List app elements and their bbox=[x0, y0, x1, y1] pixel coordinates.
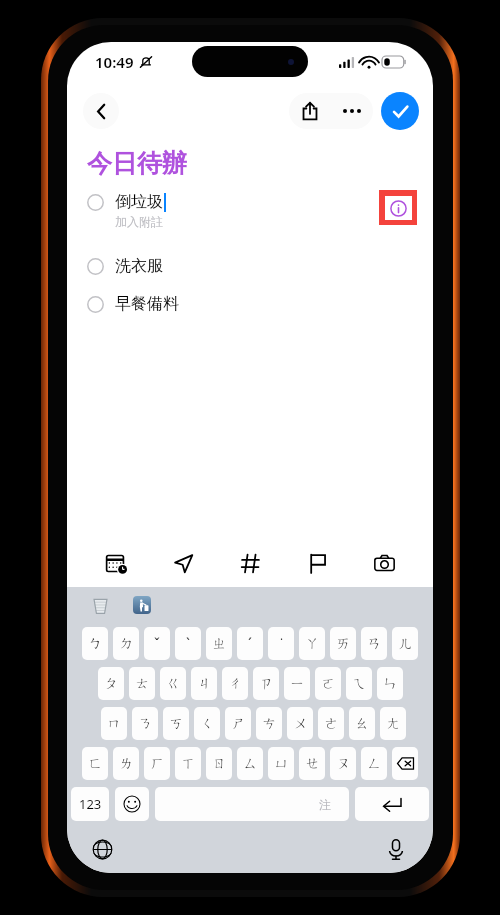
staticText: ㄆ bbox=[104, 675, 119, 693]
button[interactable]: Details bbox=[379, 190, 417, 225]
staticText: 倒垃圾 bbox=[115, 192, 163, 212]
staticText: ㄐ bbox=[197, 675, 212, 693]
staticText: ㄏ bbox=[150, 755, 165, 773]
button[interactable]: ㄔ bbox=[222, 667, 248, 700]
button[interactable]: Add tag bbox=[222, 541, 278, 585]
button[interactable]: 早餐備料 bbox=[87, 285, 433, 323]
staticText: ㄊ bbox=[135, 675, 150, 693]
staticText: ˊ bbox=[248, 634, 252, 653]
button[interactable]: ㄊ bbox=[129, 667, 155, 700]
button[interactable]: ㄘ bbox=[256, 707, 282, 740]
staticText: ㄑ bbox=[200, 715, 215, 733]
button[interactable]: ㄎ bbox=[163, 707, 189, 740]
button[interactable]: ㄑ bbox=[194, 707, 220, 740]
staticText: ㄚ bbox=[305, 635, 320, 653]
button[interactable]: ㄞ bbox=[330, 627, 356, 660]
button[interactable]: ㄆ bbox=[98, 667, 124, 700]
button[interactable]: ㄡ bbox=[330, 747, 356, 780]
button[interactable]: ㄍ bbox=[160, 667, 186, 700]
button[interactable]: Dictation bbox=[381, 834, 411, 864]
button[interactable]: ㄐ bbox=[191, 667, 217, 700]
button[interactable]: Add location bbox=[155, 541, 211, 585]
staticText: 123 bbox=[79, 795, 102, 813]
staticText: 洗衣服 bbox=[115, 256, 163, 276]
button[interactable]: ㄖ bbox=[206, 747, 232, 780]
button[interactable]: ㄌ bbox=[113, 747, 139, 780]
button[interactable]: Add photo bbox=[356, 541, 412, 585]
staticText: ㄗ bbox=[259, 675, 274, 693]
button[interactable] bbox=[89, 594, 111, 616]
button[interactable]: 注 bbox=[155, 787, 349, 821]
staticText: ㄣ bbox=[383, 675, 398, 693]
button[interactable]: Add date bbox=[88, 541, 144, 585]
staticText: ㄓ bbox=[212, 635, 227, 653]
staticText: ㄡ bbox=[336, 755, 351, 773]
button[interactable]: Share bbox=[289, 93, 331, 129]
staticText: 早餐備料 bbox=[115, 294, 179, 314]
staticText: ㄧ bbox=[290, 675, 305, 693]
button[interactable]: ˙ bbox=[268, 627, 294, 660]
button[interactable]: ㄝ bbox=[299, 747, 325, 780]
button[interactable] bbox=[131, 594, 153, 616]
button[interactable]: ㄕ bbox=[225, 707, 251, 740]
button[interactable]: ㄉ bbox=[113, 627, 139, 660]
button[interactable]: ㄦ bbox=[392, 627, 418, 660]
button[interactable]: ㄅ bbox=[82, 627, 108, 660]
button[interactable]: Change keyboard bbox=[87, 834, 117, 864]
staticText: ˋ bbox=[186, 634, 190, 653]
staticText: ㄌ bbox=[119, 755, 134, 773]
button[interactable]: ㄗ bbox=[253, 667, 279, 700]
button[interactable]: ㄤ bbox=[380, 707, 406, 740]
button[interactable]: Done bbox=[381, 92, 419, 130]
staticText: 注 bbox=[319, 797, 331, 812]
button[interactable]: Back bbox=[83, 93, 119, 129]
button[interactable]: ㄥ bbox=[361, 747, 387, 780]
button[interactable]: Return bbox=[355, 787, 429, 821]
button[interactable]: 123 bbox=[71, 787, 109, 821]
button[interactable]: More options bbox=[331, 93, 373, 129]
button[interactable]: ㄇ bbox=[101, 707, 127, 740]
button[interactable]: ㄙ bbox=[237, 747, 263, 780]
staticText: ㄘ bbox=[262, 715, 277, 733]
button[interactable]: ㄒ bbox=[175, 747, 201, 780]
button[interactable]: ㄩ bbox=[268, 747, 294, 780]
staticText: ㄉ bbox=[119, 635, 134, 653]
button[interactable]: Delete bbox=[392, 747, 418, 780]
button[interactable]: ㄧ bbox=[284, 667, 310, 700]
button[interactable]: ˊ bbox=[237, 627, 263, 660]
button[interactable]: ㄏ bbox=[144, 747, 170, 780]
button[interactable]: ㄢ bbox=[361, 627, 387, 660]
staticText: ㄨ bbox=[293, 715, 308, 733]
button[interactable]: ˋ bbox=[175, 627, 201, 660]
staticText: ㄜ bbox=[324, 715, 339, 733]
staticText: ㄦ bbox=[398, 635, 413, 653]
staticText: ㄠ bbox=[355, 715, 370, 733]
staticText: 加入附註 bbox=[115, 214, 163, 229]
staticText: ㄒ bbox=[181, 755, 196, 773]
button[interactable]: ㄈ bbox=[82, 747, 108, 780]
staticText: 今日待辦 bbox=[87, 148, 187, 179]
button[interactable]: ㄚ bbox=[299, 627, 325, 660]
staticText: ㄅ bbox=[88, 635, 103, 653]
staticText: ㄢ bbox=[367, 635, 382, 653]
button[interactable]: ㄟ bbox=[346, 667, 372, 700]
button[interactable]: ㄛ bbox=[315, 667, 341, 700]
button[interactable]: ㄣ bbox=[377, 667, 403, 700]
button[interactable]: ㄨ bbox=[287, 707, 313, 740]
button[interactable]: ㄠ bbox=[349, 707, 375, 740]
button[interactable]: Add flag bbox=[289, 541, 345, 585]
button[interactable]: ㄋ bbox=[132, 707, 158, 740]
button[interactable]: 倒垃圾 bbox=[67, 189, 433, 247]
button[interactable]: ㄜ bbox=[318, 707, 344, 740]
staticText: ˇ bbox=[154, 634, 160, 653]
staticText: ㄈ bbox=[88, 755, 103, 773]
button[interactable]: 洗衣服 bbox=[87, 247, 433, 285]
button[interactable]: Emoji bbox=[115, 787, 149, 821]
staticText: ㄙ bbox=[243, 755, 258, 773]
staticText: ㄞ bbox=[336, 635, 351, 653]
staticText: ㄋ bbox=[138, 715, 153, 733]
button[interactable]: ㄓ bbox=[206, 627, 232, 660]
staticText: ㄍ bbox=[166, 675, 181, 693]
button[interactable]: ˇ bbox=[144, 627, 170, 660]
staticText: ㄕ bbox=[231, 715, 246, 733]
